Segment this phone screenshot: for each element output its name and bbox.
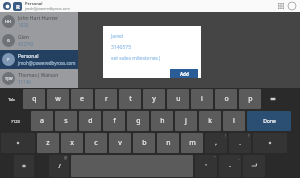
staticText: G — [7, 38, 10, 43]
button[interactable]: . — [229, 133, 251, 153]
staticText: ' — [205, 163, 207, 170]
staticText: d — [88, 116, 93, 126]
button[interactable]: Shift — [1, 133, 35, 153]
staticText: y — [152, 94, 156, 104]
staticText: ? — [248, 133, 250, 138]
button[interactable]: x — [61, 133, 83, 153]
staticText: 1825 — [18, 22, 29, 28]
button[interactable]: g — [127, 111, 149, 131]
staticText: g — [136, 116, 141, 126]
staticText: TJW — [5, 76, 13, 81]
button[interactable]: y — [143, 89, 165, 109]
staticText: m — [189, 138, 196, 148]
button[interactable]: u — [167, 89, 189, 109]
staticText: 3140575 — [111, 44, 132, 51]
staticText: / — [58, 162, 61, 170]
button[interactable]: q — [23, 89, 45, 109]
button[interactable]: r — [95, 89, 117, 109]
staticText: Personal — [25, 1, 43, 6]
button[interactable]: c — [85, 133, 107, 153]
button[interactable]: i — [191, 89, 213, 109]
button[interactable]: w — [47, 89, 69, 109]
staticText: Glen — [18, 34, 29, 41]
button[interactable]: n — [157, 133, 179, 153]
button[interactable]: h — [151, 111, 173, 131]
staticText: v — [118, 138, 122, 148]
staticText: . — [239, 139, 241, 147]
button[interactable]: Enter — [243, 155, 265, 177]
button[interactable]: a — [31, 111, 53, 131]
staticText: w — [55, 94, 61, 104]
staticText: _ — [238, 155, 240, 160]
button[interactable]: Account badge — [13, 2, 22, 11]
button[interactable]: Add — [170, 69, 198, 78]
staticText: h — [160, 116, 165, 126]
staticText: P — [7, 57, 10, 62]
button[interactable]: TJW — [0, 69, 78, 88]
button[interactable]: ' — [195, 155, 217, 177]
button[interactable]: d — [79, 111, 101, 131]
button[interactable]: t — [119, 89, 141, 109]
button[interactable]: b — [133, 133, 155, 153]
staticText: " — [214, 155, 216, 160]
button[interactable]: e — [71, 89, 93, 109]
staticText: 11146 — [18, 79, 31, 85]
staticText: s — [64, 116, 68, 126]
button[interactable]: P — [0, 50, 78, 69]
button[interactable]: - — [219, 155, 241, 177]
button[interactable]: Tab — [1, 89, 21, 109]
button[interactable]: Settings key — [14, 155, 34, 177]
staticText: t — [129, 94, 132, 104]
staticText: Personal — [18, 53, 39, 60]
staticText: z — [46, 138, 50, 148]
button[interactable]: z — [37, 133, 59, 153]
staticText: R — [16, 3, 20, 11]
button[interactable]: k — [199, 111, 221, 131]
staticText: ! — [225, 133, 226, 138]
button[interactable]: / — [49, 155, 69, 177]
staticText: n — [166, 138, 171, 148]
staticText: q — [32, 94, 37, 104]
staticText: r — [105, 94, 108, 104]
button[interactable]: HH — [0, 12, 78, 31]
button[interactable]: m — [181, 133, 203, 153]
staticText: - — [229, 162, 231, 170]
button[interactable]: o — [215, 89, 237, 109]
staticText: Thomas J Watson — [18, 72, 59, 79]
staticText: l — [233, 116, 235, 126]
button[interactable]: s — [55, 111, 77, 131]
staticText: a — [40, 116, 44, 126]
staticText: x — [70, 138, 74, 148]
button[interactable]: f — [103, 111, 125, 131]
button[interactable]: G — [0, 31, 78, 50]
button[interactable]: , — [205, 133, 227, 153]
staticText: k — [208, 116, 212, 126]
staticText: f — [113, 116, 116, 126]
button[interactable]: l — [223, 111, 245, 131]
staticText: b — [142, 138, 147, 148]
staticText: j — [185, 116, 187, 126]
button[interactable]: Apps grid — [276, 1, 286, 11]
staticText: u — [176, 94, 181, 104]
staticText: c — [94, 138, 98, 148]
staticText: Jared — [111, 33, 124, 40]
staticText: set sales milestones| — [111, 55, 161, 62]
button[interactable]: Profile — [3, 2, 11, 10]
staticText: i — [201, 94, 203, 104]
button[interactable]: Backspace — [263, 89, 283, 109]
button[interactable]: Shift right — [253, 133, 287, 153]
button[interactable]: v — [109, 133, 131, 153]
staticText: John Hart Hunter — [18, 15, 59, 22]
button[interactable]: Done — [247, 111, 291, 131]
staticText: jmoh@poweredbyross.com — [18, 60, 76, 66]
button[interactable]: ?123 — [1, 111, 29, 131]
button[interactable]: j — [175, 111, 197, 131]
button[interactable]: p — [239, 89, 261, 109]
staticText: p — [248, 94, 253, 104]
staticText: Done — [263, 118, 276, 125]
button[interactable]: Settings — [286, 0, 298, 12]
staticText: Add — [180, 71, 189, 77]
staticText: o — [224, 94, 229, 104]
staticText: , — [215, 139, 217, 147]
